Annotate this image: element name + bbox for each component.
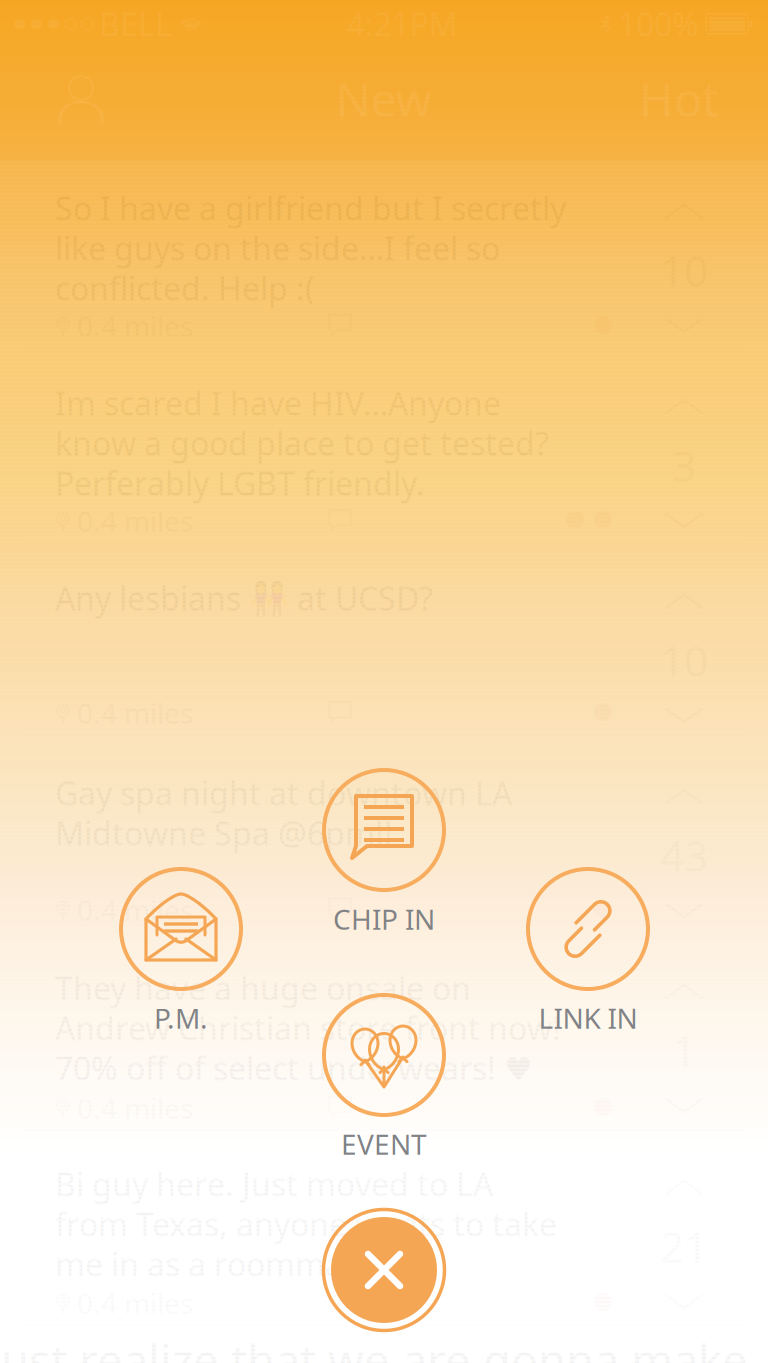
staticText: I just realize that we are gonna make (0, 1330, 748, 1363)
button[interactable]: Close (323, 1209, 444, 1330)
button[interactable]: LINK IN (0, 0, 768, 1363)
button[interactable]: Hot (639, 68, 735, 130)
staticText: Im scared I have HIV…Anyone (55, 382, 501, 424)
staticText: Gay spa night at downtown LA (55, 772, 512, 814)
staticText: me in as a roommate? (55, 1243, 387, 1285)
staticText: conflicted. Help :( (55, 267, 315, 309)
staticText: 100% (618, 3, 699, 45)
staticText: like guys on the side…I feel so (55, 227, 500, 269)
button[interactable]: New (335, 68, 432, 130)
staticText: CHIP IN (333, 900, 435, 938)
staticText: Hot (639, 68, 719, 130)
button[interactable]: P.M. (0, 0, 768, 1363)
staticText: EVENT (341, 1125, 427, 1163)
staticText: Any lesbians 👭 at UCSD? (55, 577, 433, 619)
staticText: Andrew Christian store front now! (55, 1007, 561, 1049)
staticText: 3 (672, 437, 696, 493)
staticText: 10 (660, 242, 708, 298)
staticText: BELL (99, 3, 172, 45)
button[interactable]: EVENT (0, 0, 768, 1363)
staticText: Midtowne Spa @6pm!! (55, 812, 393, 854)
staticText: They have a huge onsale on (55, 967, 471, 1009)
staticText: Perferably LGBT friendly. (55, 462, 425, 504)
staticText: 4:21PM (346, 3, 457, 45)
staticText: 0.4 miles (77, 891, 193, 929)
staticText: Bi guy here. Just moved to LA (55, 1163, 493, 1205)
staticText: LINK IN (538, 999, 637, 1037)
staticText: So I have a girlfriend but I secretly (55, 187, 566, 229)
staticText: New (335, 68, 432, 130)
staticText: 43 (660, 827, 708, 883)
staticText: P.M. (154, 999, 208, 1037)
staticText: 70% off of select underwears! ♥ (55, 1047, 533, 1089)
staticText: 10 (660, 632, 708, 688)
button[interactable]: CHIP IN (0, 0, 768, 1363)
staticText: know a good place to get tested? (55, 422, 549, 464)
staticText: 0.4 miles (77, 502, 193, 540)
button[interactable]: Profile (33, 64, 129, 134)
staticText: from Texas, anyone wants to take (55, 1203, 557, 1245)
